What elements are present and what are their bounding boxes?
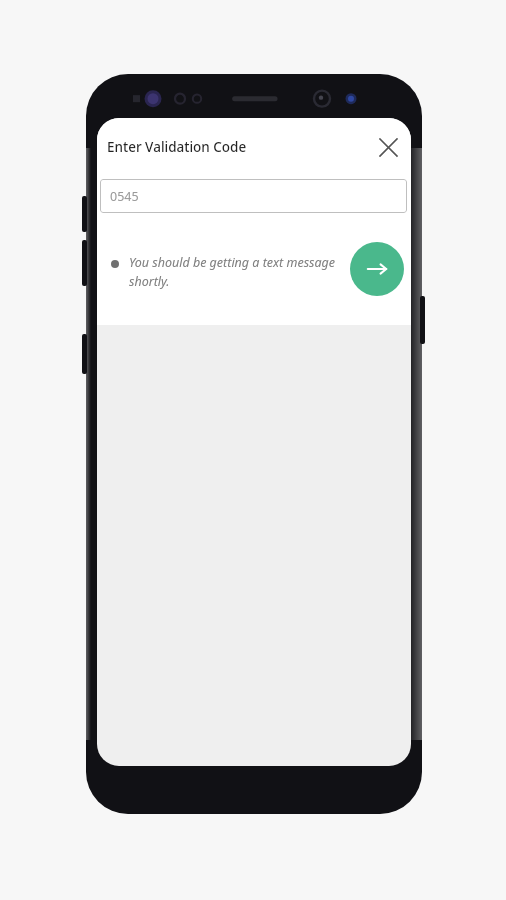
button[interactable]: Volume down — [82, 240, 87, 286]
button[interactable]: Assistant — [82, 334, 87, 374]
button[interactable]: 0545 — [100, 179, 407, 213]
button[interactable]: Submit — [350, 242, 404, 296]
button[interactable]: Volume up — [82, 196, 87, 232]
button[interactable]: Close — [373, 132, 403, 162]
button[interactable]: Power — [420, 296, 425, 344]
staticText: Enter Validation Code — [107, 138, 247, 156]
staticText: You should be getting a text message sho… — [129, 254, 341, 290]
staticText: 0545 — [110, 188, 139, 205]
